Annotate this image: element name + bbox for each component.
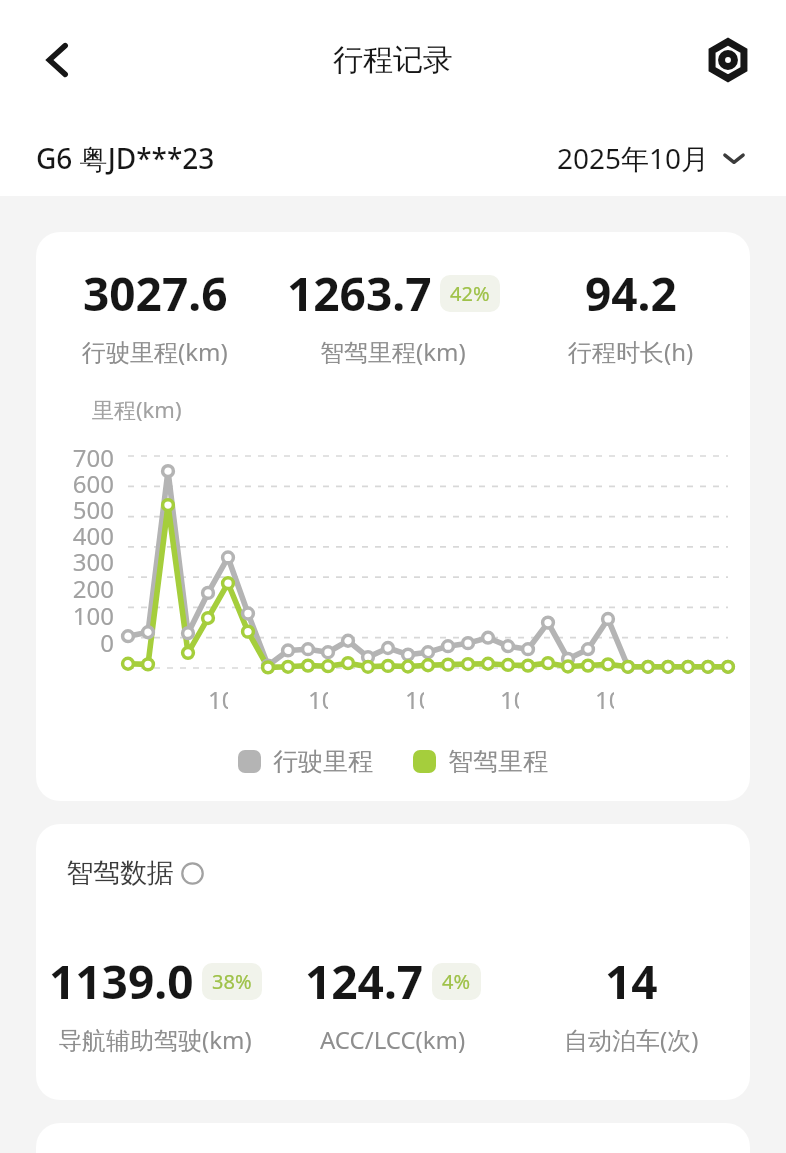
staticText: 400	[36, 519, 114, 545]
staticText: 1139.0	[49, 950, 194, 1013]
staticText: 10/10	[308, 683, 328, 716]
button[interactable]: Back	[26, 28, 90, 92]
staticText: 智驾里程(km)	[320, 335, 466, 368]
staticText: 38%	[212, 968, 252, 995]
staticText: 3027.6	[83, 262, 228, 325]
staticText: 自动泊车(次)	[564, 1023, 699, 1056]
staticText: 行驶里程(km)	[82, 335, 228, 368]
staticText: 10/05	[208, 683, 228, 716]
staticText: 智驾数据	[66, 856, 174, 890]
button[interactable]: Settings	[696, 28, 760, 92]
staticText: 行驶里程	[273, 746, 373, 777]
staticText: 4%	[442, 968, 471, 995]
staticText: 100	[36, 599, 114, 626]
staticText: 14	[605, 950, 658, 1013]
staticText: 300	[36, 545, 114, 572]
staticText: 42%	[450, 280, 490, 307]
staticText: 智驾里程	[448, 746, 548, 777]
staticText: 10/20	[500, 683, 519, 716]
staticText: 2025年10月	[557, 139, 710, 177]
staticText: 94.2	[585, 262, 677, 325]
staticText: 200	[36, 572, 114, 599]
staticText: 1263.7	[287, 262, 432, 325]
staticText: 行程时长(h)	[568, 335, 694, 368]
staticText: ACC/LCC(km)	[320, 1023, 466, 1056]
staticText: G6 粤JD***23	[36, 139, 215, 177]
staticText: 600	[36, 467, 114, 493]
staticText: 700	[36, 441, 114, 467]
staticText: 10/15	[405, 683, 424, 716]
staticText: 10/25	[595, 683, 614, 716]
staticText: 500	[36, 493, 114, 519]
staticText: 124.7	[305, 950, 424, 1013]
staticText: 里程(km)	[92, 394, 182, 424]
staticText: 导航辅助驾驶(km)	[58, 1023, 252, 1056]
staticText: 0	[36, 626, 114, 653]
button[interactable]: 2025年10月	[553, 135, 750, 181]
staticText: 行程记录	[333, 41, 453, 79]
button[interactable]: 智驾数据	[66, 856, 204, 890]
